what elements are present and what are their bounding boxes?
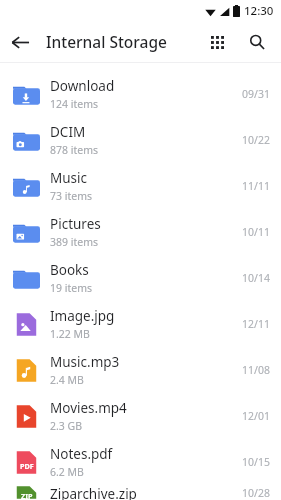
button[interactable]: Movies.mp4 bbox=[0, 393, 281, 439]
staticText: 10/22 bbox=[242, 133, 270, 147]
staticText: 6.2 MB bbox=[50, 465, 84, 479]
button[interactable]: ZIP bbox=[0, 485, 281, 500]
staticText: 11/08 bbox=[242, 363, 270, 377]
staticText: 09/31 bbox=[242, 87, 270, 101]
staticText: 12:30 bbox=[244, 3, 274, 19]
staticText: 2.4 MB bbox=[50, 373, 84, 387]
staticText: 2.3 GB bbox=[50, 419, 83, 433]
staticText: Music bbox=[50, 169, 88, 187]
staticText: 10/11 bbox=[242, 225, 270, 239]
button[interactable]: PDF bbox=[0, 439, 281, 485]
staticText: 10/15 bbox=[242, 455, 270, 469]
staticText: 10/28 bbox=[242, 486, 270, 500]
staticText: 1.22 MB bbox=[50, 327, 90, 341]
staticText: 10/14 bbox=[242, 271, 270, 285]
button[interactable]: Grid view bbox=[197, 22, 237, 62]
staticText: 19 items bbox=[50, 281, 93, 295]
staticText: Movies.mp4 bbox=[50, 399, 127, 417]
staticText: 12/11 bbox=[242, 317, 270, 331]
staticText: ZIP bbox=[21, 491, 33, 500]
staticText: Music.mp3 bbox=[50, 353, 120, 371]
staticText: Internal Storage bbox=[46, 31, 167, 52]
staticText: 124 items bbox=[50, 97, 99, 111]
staticText: 878 items bbox=[50, 143, 99, 157]
staticText: PDF bbox=[20, 461, 34, 471]
staticText: Pictures bbox=[50, 215, 101, 233]
button[interactable]: Back bbox=[0, 22, 40, 62]
staticText: 11/11 bbox=[242, 179, 270, 193]
staticText: 12/01 bbox=[242, 409, 270, 423]
button[interactable]: Image.jpg bbox=[0, 301, 281, 347]
staticText: 73 items bbox=[50, 189, 93, 203]
button[interactable]: Music.mp3 bbox=[0, 347, 281, 393]
staticText: Image.jpg bbox=[50, 307, 115, 325]
button[interactable]: Pictures bbox=[0, 209, 281, 255]
button[interactable]: Music bbox=[0, 163, 281, 209]
staticText: DCIM bbox=[50, 123, 86, 141]
staticText: Ziparchive.zip bbox=[50, 485, 137, 500]
staticText: Notes.pdf bbox=[50, 445, 113, 463]
button[interactable]: Search bbox=[237, 22, 277, 62]
staticText: 389 items bbox=[50, 235, 99, 249]
button[interactable]: Books bbox=[0, 255, 281, 301]
staticText: Download bbox=[50, 77, 115, 95]
button[interactable]: Download bbox=[0, 71, 281, 117]
staticText: Books bbox=[50, 261, 89, 279]
button[interactable]: DCIM bbox=[0, 117, 281, 163]
